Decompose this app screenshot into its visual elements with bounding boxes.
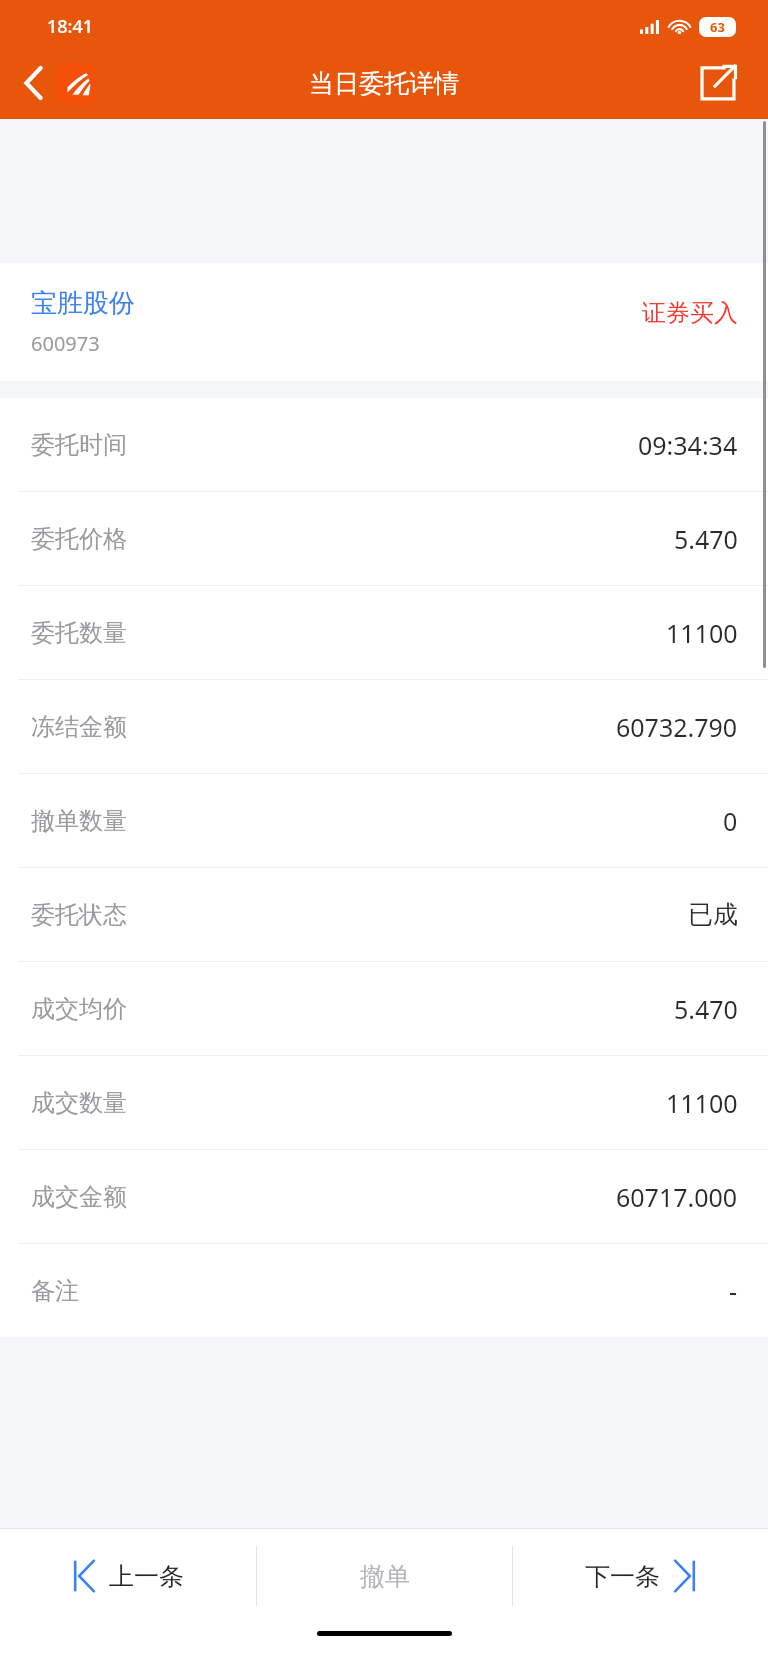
- staticText: 冻结金额: [31, 712, 127, 742]
- button[interactable]: 委托时间: [0, 398, 768, 491]
- button[interactable]: 宝胜股份: [0, 263, 768, 381]
- staticText: 宝胜股份: [31, 287, 135, 320]
- staticText: 撤单数量: [31, 806, 127, 836]
- staticText: 上一条: [109, 1561, 184, 1592]
- button[interactable]: 委托数量: [0, 586, 768, 679]
- staticText: 成交数量: [31, 1088, 127, 1118]
- staticText: 600973: [31, 330, 100, 357]
- staticText: 证券买入: [642, 298, 738, 328]
- button[interactable]: 委托价格: [0, 492, 768, 585]
- staticText: 当日委托详情: [309, 68, 459, 99]
- staticText: 60732.790: [616, 710, 738, 744]
- staticText: -: [729, 1274, 738, 1308]
- button[interactable]: 备注: [0, 1244, 768, 1337]
- button[interactable]: 冻结金额: [0, 680, 768, 773]
- button[interactable]: App logo: [56, 63, 97, 104]
- staticText: 5.470: [674, 522, 738, 556]
- button[interactable]: Share: [692, 57, 744, 109]
- staticText: 11100: [666, 616, 738, 650]
- staticText: 下一条: [585, 1561, 660, 1592]
- staticText: 委托时间: [31, 430, 127, 460]
- staticText: 委托状态: [31, 900, 127, 930]
- staticText: 11100: [666, 1086, 738, 1120]
- button[interactable]: 下一条: [513, 1529, 768, 1623]
- button[interactable]: Back: [10, 60, 56, 106]
- staticText: 18:41: [47, 14, 94, 39]
- button[interactable]: 上一条: [0, 1529, 256, 1623]
- staticText: 成交均价: [31, 994, 127, 1024]
- staticText: 60717.000: [616, 1180, 738, 1214]
- staticText: 0: [723, 804, 738, 838]
- staticText: 撤单: [360, 1561, 410, 1592]
- staticText: 委托数量: [31, 618, 127, 648]
- button[interactable]: 成交均价: [0, 962, 768, 1055]
- staticText: 5.470: [674, 992, 738, 1026]
- staticText: 已成: [688, 899, 738, 930]
- button[interactable]: 成交数量: [0, 1056, 768, 1149]
- button[interactable]: 撤单数量: [0, 774, 768, 867]
- staticText: 委托价格: [31, 524, 127, 554]
- staticText: 63: [710, 18, 725, 36]
- staticText: 备注: [31, 1276, 79, 1306]
- button[interactable]: 撤单: [257, 1529, 512, 1623]
- staticText: 成交金额: [31, 1182, 127, 1212]
- button[interactable]: 成交金额: [0, 1150, 768, 1243]
- button[interactable]: 委托状态: [0, 868, 768, 961]
- staticText: 09:34:34: [638, 428, 738, 462]
